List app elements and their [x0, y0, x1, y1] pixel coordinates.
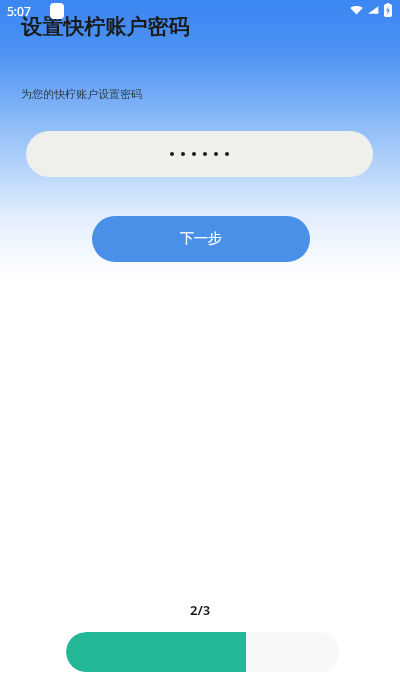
- staticText: 2/3: [190, 601, 211, 619]
- staticText: 5:07: [7, 3, 31, 19]
- staticText: 设置快柠账户密码: [21, 14, 189, 40]
- button[interactable]: 下一步: [92, 216, 310, 262]
- staticText: 为您的快柠账户设置密码: [21, 87, 142, 101]
- button[interactable]: 密码输入框: [26, 131, 373, 177]
- staticText: 下一步: [180, 230, 222, 248]
